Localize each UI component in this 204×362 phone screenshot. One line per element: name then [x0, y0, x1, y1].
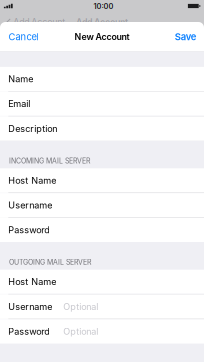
staticText: Email — [8, 98, 30, 109]
staticText: Save — [175, 31, 197, 42]
button[interactable]: Password — [0, 218, 204, 242]
staticText: Description — [8, 123, 57, 134]
button[interactable]: Username — [0, 294, 204, 319]
button[interactable]: Save — [169, 25, 204, 48]
staticText: Username — [8, 200, 52, 211]
button[interactable]: Host Name — [0, 270, 204, 294]
button[interactable]: Password — [0, 319, 204, 343]
staticText: 10:00 — [94, 2, 114, 11]
button[interactable]: Username — [0, 193, 204, 217]
staticText: Optional — [63, 301, 98, 312]
staticText: Username — [8, 301, 52, 312]
staticText: Host Name — [8, 175, 56, 186]
staticText: OUTGOING MAIL SERVER — [9, 258, 91, 266]
staticText: Password — [8, 326, 50, 337]
staticText: Host Name — [8, 276, 56, 287]
button[interactable]: Name — [0, 67, 204, 91]
button[interactable]: Host Name — [0, 168, 204, 192]
staticText: Optional — [63, 326, 98, 337]
staticText: Password — [8, 224, 50, 235]
staticText: Cancel — [8, 31, 38, 42]
staticText: New Account — [74, 31, 129, 42]
staticText: Name — [8, 73, 33, 84]
staticText: Add Account — [76, 17, 128, 27]
staticText: Add Account — [13, 16, 65, 27]
button[interactable]: Description — [0, 116, 204, 141]
staticText: INCOMING MAIL SERVER — [9, 157, 90, 165]
button[interactable]: Email — [0, 92, 204, 116]
button[interactable]: Cancel — [0, 25, 44, 48]
